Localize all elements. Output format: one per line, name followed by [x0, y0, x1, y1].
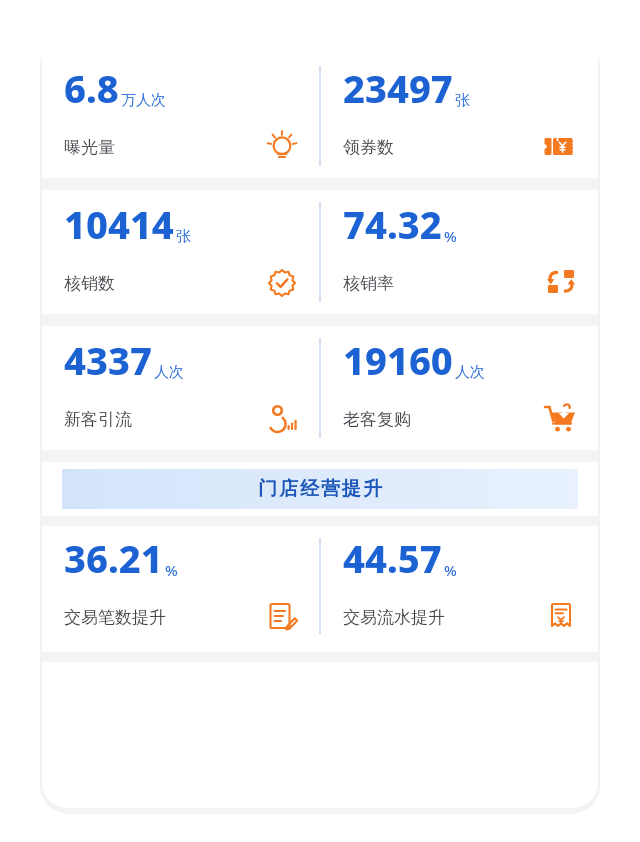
button[interactable]: 6.8 — [42, 54, 319, 178]
staticText: 领券数 — [343, 137, 394, 158]
staticText: 36.21 — [64, 532, 163, 584]
button[interactable]: 44.57 — [321, 526, 598, 646]
staticText: 曝光量 — [64, 137, 115, 158]
staticText: 万人次 — [121, 91, 166, 110]
staticText: 核销数 — [64, 273, 115, 294]
staticText: 人次 — [455, 363, 485, 382]
staticText: 人次 — [154, 363, 184, 382]
staticText: 23497 — [343, 62, 453, 114]
button[interactable]: 36.21 — [42, 526, 319, 646]
staticText: 张 — [176, 227, 191, 246]
button[interactable]: 门店经营提升 — [62, 469, 578, 509]
other: 曝光量图标 — [259, 124, 305, 170]
staticText: 19160 — [343, 334, 453, 386]
staticText: % — [444, 226, 457, 246]
button[interactable]: 4337 — [42, 326, 319, 450]
staticText: 4337 — [64, 334, 152, 386]
staticText: % — [165, 560, 178, 580]
staticText: 核销率 — [343, 273, 394, 294]
other: 交易流水图标 — [538, 594, 584, 640]
staticText: 张 — [455, 91, 470, 110]
other: 核销率图标 — [538, 260, 584, 306]
staticText: 老客复购 — [343, 409, 411, 430]
staticText: 交易笔数提升 — [64, 607, 166, 628]
staticText: 门店经营提升 — [257, 477, 383, 501]
button[interactable]: 74.32 — [321, 190, 598, 314]
staticText: 6.8 — [64, 62, 119, 114]
staticText: 交易流水提升 — [343, 607, 445, 628]
other: 新客引流图标 — [259, 396, 305, 442]
other: 交易笔数图标 — [259, 594, 305, 640]
button[interactable]: 23497 — [321, 54, 598, 178]
staticText: 10414 — [64, 198, 174, 250]
other: 核销数图标 — [259, 260, 305, 306]
other: 领券数图标 — [538, 124, 584, 170]
staticText: 44.57 — [343, 532, 442, 584]
staticText: 新客引流 — [64, 409, 132, 430]
button[interactable]: 10414 — [42, 190, 319, 314]
staticText: 74.32 — [343, 198, 442, 250]
button[interactable]: 19160 — [321, 326, 598, 450]
other: 老客复购图标 — [538, 396, 584, 442]
staticText: % — [444, 560, 457, 580]
